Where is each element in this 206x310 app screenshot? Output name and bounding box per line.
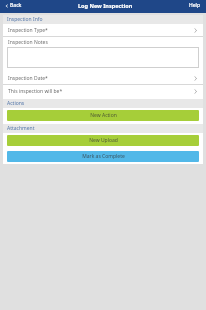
staticText: Attachment	[7, 125, 35, 132]
staticText: Inspection Info	[7, 16, 43, 23]
button[interactable]: Back	[3, 0, 24, 11]
staticText: This inspection will be*	[8, 88, 192, 95]
button[interactable]: New Action	[7, 110, 199, 121]
staticText: Back	[10, 2, 22, 9]
staticText: Inspection Type*	[8, 27, 192, 34]
staticText: New Action	[90, 112, 117, 119]
button[interactable]: Inspection Type*	[3, 24, 203, 36]
staticText: Inspection Notes	[8, 39, 48, 46]
button[interactable]: Help	[187, 0, 203, 11]
staticText: Mark as Complete	[82, 153, 125, 160]
button[interactable]: Inspection Date*	[3, 72, 203, 84]
button[interactable]: This inspection will be*	[3, 85, 203, 97]
staticText: Actions	[7, 100, 25, 107]
staticText: Log New Inspection	[78, 2, 133, 9]
staticText: Help	[189, 2, 201, 9]
staticText: New Upload	[89, 137, 118, 144]
button[interactable]: Mark as Complete	[7, 151, 199, 162]
button[interactable]	[7, 47, 199, 68]
button[interactable]: New Upload	[7, 135, 199, 146]
staticText: Inspection Date*	[8, 75, 192, 82]
